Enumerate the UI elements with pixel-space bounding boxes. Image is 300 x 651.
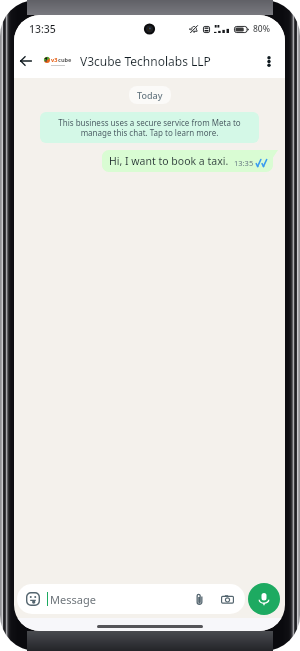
button[interactable]: Voice message [248,583,280,615]
staticText: 80% [253,23,270,35]
staticText: Message [50,592,189,607]
staticText: v3 [51,56,58,64]
staticText: Hi, I want to book a taxi. [109,154,229,168]
button[interactable]: This business uses a secure service from… [40,112,259,143]
button[interactable]: Camera [217,589,237,609]
staticText: 13:35 [234,158,254,168]
staticText: cube [58,56,72,64]
button[interactable]: Today [137,89,163,101]
staticText: 13:35 [29,22,56,36]
staticText: V3cube Technolabs LLP [80,53,252,69]
button[interactable]: Message [17,584,245,614]
button[interactable]: Attach [189,589,209,609]
staticText: This business uses a secure service from… [48,117,251,138]
button[interactable]: Back [14,46,38,76]
staticText: Today [137,89,163,101]
button[interactable]: Business profile [44,55,72,67]
button[interactable]: More options [252,46,285,76]
